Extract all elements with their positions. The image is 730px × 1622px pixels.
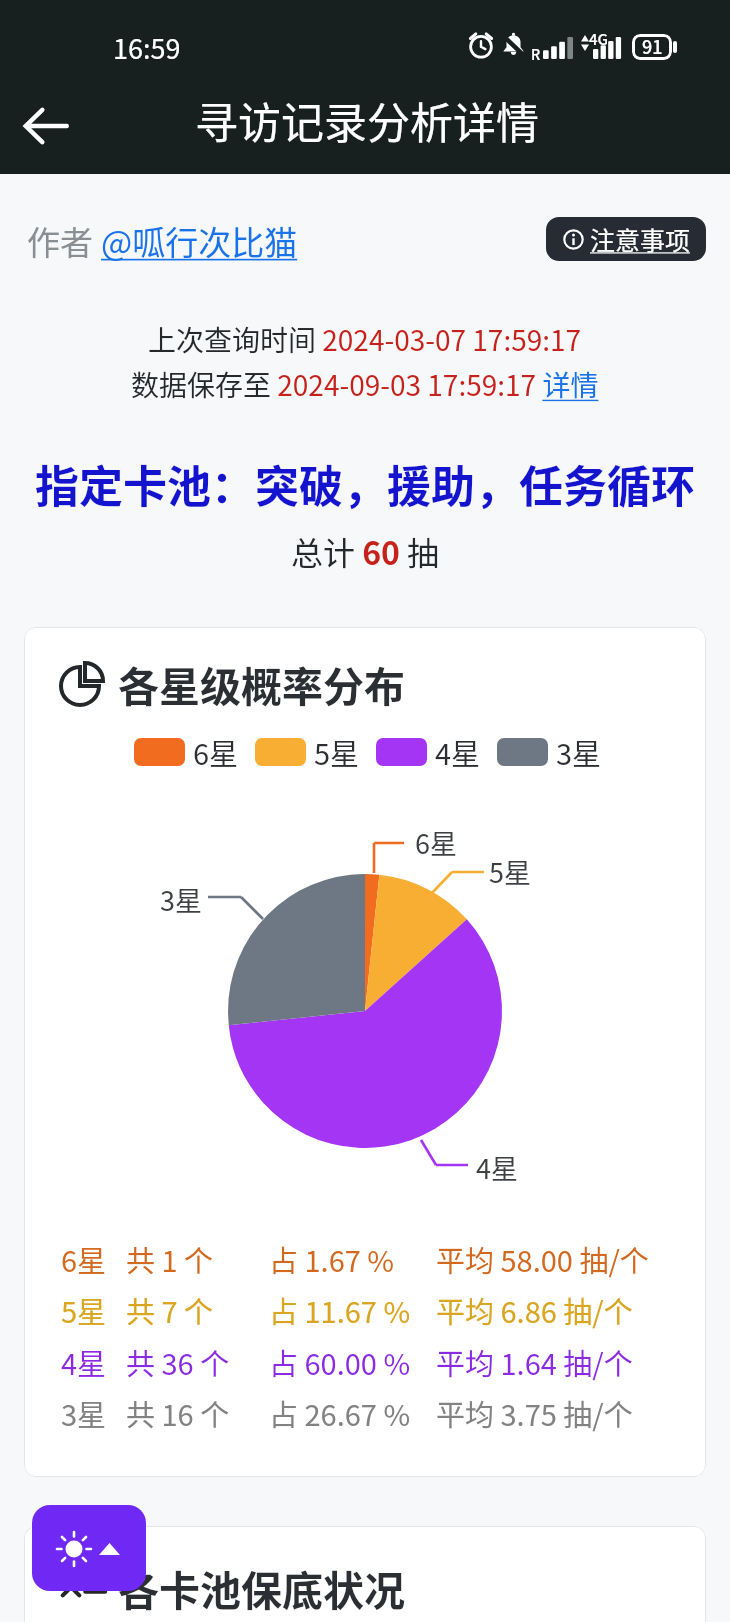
- staticText: 上次查询时间 2024-03-07 17:59:17: [148, 319, 582, 360]
- button[interactable]: @呱行次比猫: [101, 217, 298, 265]
- staticText: 各卡池保底状况: [118, 1558, 405, 1617]
- staticText: 注意事项: [590, 221, 691, 257]
- staticText: R: [531, 44, 541, 64]
- staticText: 占 11.67 %: [269, 1289, 411, 1331]
- staticText: 6星: [61, 1238, 107, 1280]
- staticText: 占 1.67 %: [269, 1238, 395, 1280]
- staticText: 数据保存至 2024-09-03 17:59:17 详情: [131, 364, 599, 405]
- staticText: 总计 60 抽: [291, 528, 440, 574]
- staticText: 指定卡池：突破，援助，任务循环: [35, 452, 695, 516]
- staticText: 4G: [589, 28, 609, 50]
- staticText: 作者: [27, 217, 101, 265]
- staticText: 共 16 个: [126, 1392, 230, 1434]
- staticText: 16:59: [113, 28, 181, 67]
- staticText: 5星: [61, 1289, 107, 1331]
- staticText: 6星: [415, 823, 457, 862]
- staticText: 5星: [489, 852, 531, 891]
- staticText: 寻访记录分析详情: [195, 89, 539, 151]
- button[interactable]: Toggle theme: [32, 1505, 146, 1591]
- button[interactable]: 3星: [497, 731, 602, 773]
- staticText: 共 7 个: [126, 1289, 214, 1331]
- staticText: 共 36 个: [126, 1341, 230, 1383]
- staticText: 4星: [476, 1148, 518, 1187]
- staticText: 平均 1.64 抽/个: [436, 1341, 633, 1383]
- staticText: 3星: [556, 731, 602, 773]
- staticText: 共 1 个: [126, 1238, 214, 1280]
- staticText: 91: [642, 34, 663, 59]
- button[interactable]: Back: [12, 92, 80, 160]
- staticText: 5星: [314, 731, 360, 773]
- staticText: 4星: [435, 731, 481, 773]
- staticText: 各星级概率分布: [118, 654, 405, 713]
- staticText: 平均 58.00 抽/个: [436, 1238, 649, 1280]
- staticText: 平均 3.75 抽/个: [436, 1392, 633, 1434]
- staticText: 6星: [193, 731, 239, 773]
- staticText: 占 60.00 %: [269, 1341, 411, 1383]
- staticText: 3星: [61, 1392, 107, 1434]
- staticText: 平均 6.86 抽/个: [436, 1289, 633, 1331]
- button[interactable]: 4星: [376, 731, 481, 773]
- staticText: 3星: [160, 880, 202, 919]
- button[interactable]: 5星: [255, 731, 360, 773]
- staticText: 4星: [61, 1341, 107, 1383]
- button[interactable]: 注意事项: [546, 217, 706, 261]
- staticText: 占 26.67 %: [269, 1392, 411, 1434]
- button[interactable]: 6星: [134, 731, 239, 773]
